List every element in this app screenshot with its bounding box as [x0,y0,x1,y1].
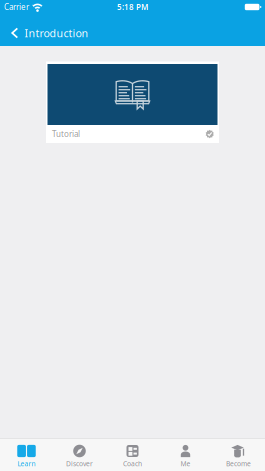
button[interactable]: Learn [0,438,53,471]
staticText: Coach [123,459,142,468]
staticText: Learn [17,459,35,468]
button[interactable]: Discover [53,438,106,471]
button[interactable]: Back [0,20,96,46]
button[interactable]: Me [159,438,212,471]
staticText: Me [180,459,190,468]
staticText: Tutorial [52,129,80,139]
button[interactable]: Become [212,438,265,471]
staticText: Discover [66,459,93,468]
staticText: Become [226,459,251,468]
button[interactable]: Coach [106,438,159,471]
staticText: 5:18 PM [117,2,148,12]
button[interactable]: Tutorial [46,61,219,143]
staticText: Introduction [24,26,88,40]
staticText: Carrier [4,2,29,12]
